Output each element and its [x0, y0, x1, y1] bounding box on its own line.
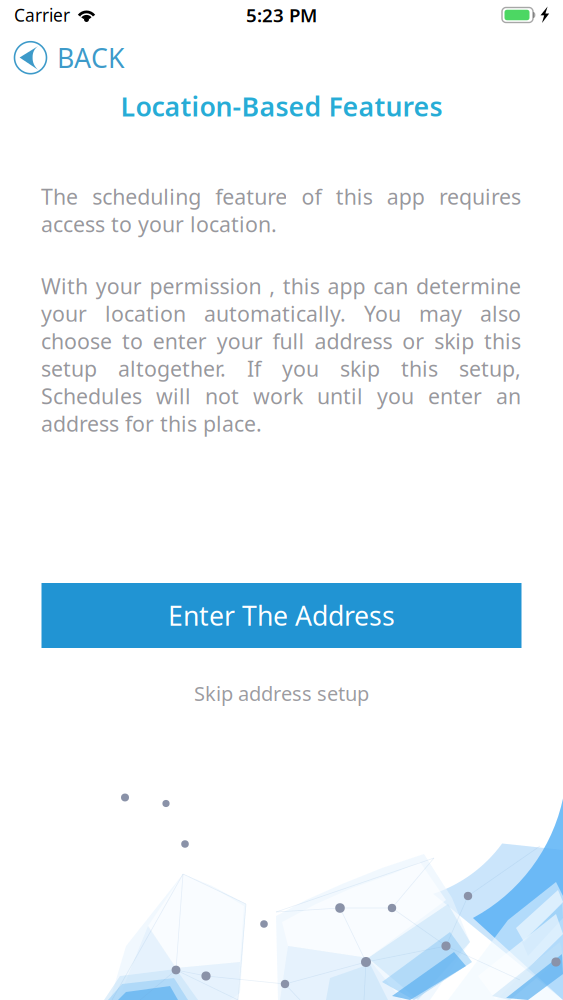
staticText: choose: [41, 327, 112, 355]
staticText: setup,: [459, 354, 521, 383]
staticText: automatically.: [204, 299, 346, 328]
staticText: also: [480, 299, 521, 328]
staticText: your: [41, 299, 87, 328]
staticText: Skip address setup: [194, 680, 369, 707]
staticText: The: [41, 182, 78, 211]
staticText: enter: [153, 327, 207, 355]
staticText: you: [377, 382, 414, 410]
staticText: skip: [340, 354, 380, 383]
staticText: will: [156, 382, 191, 410]
staticText: an: [496, 382, 521, 410]
staticText: may: [419, 299, 462, 328]
staticText: Enter The Address: [168, 598, 395, 633]
staticText: permission: [149, 272, 261, 300]
staticText: this: [401, 354, 438, 383]
staticText: You: [364, 299, 401, 328]
staticText: altogether.: [118, 354, 226, 383]
button[interactable]: BACK: [0, 30, 141, 79]
staticText: your: [217, 327, 263, 355]
staticText: Carrier: [14, 3, 70, 26]
staticText: location: [105, 299, 186, 328]
staticText: or: [402, 327, 424, 355]
staticText: can: [373, 272, 408, 300]
staticText: until: [317, 382, 363, 410]
staticText: your: [96, 272, 142, 300]
staticText: address for this place.: [41, 409, 262, 438]
button[interactable]: Skip address setup: [184, 675, 379, 712]
staticText: of: [301, 182, 321, 211]
staticText: If: [247, 354, 261, 383]
staticText: skip: [434, 327, 474, 355]
staticText: Location-Based Features: [120, 88, 442, 124]
staticText: full: [272, 327, 304, 355]
staticText: 5:23 PM: [246, 3, 317, 27]
staticText: requires: [439, 182, 521, 211]
staticText: determine: [416, 272, 521, 300]
staticText: With: [41, 272, 88, 300]
staticText: this: [283, 272, 320, 300]
staticText: enter: [428, 382, 482, 410]
staticText: this: [336, 182, 373, 211]
staticText: work: [253, 382, 303, 410]
staticText: address: [314, 327, 392, 355]
staticText: this: [484, 327, 521, 355]
staticText: you: [282, 354, 319, 383]
staticText: Schedules: [41, 382, 142, 410]
staticText: setup: [41, 354, 97, 383]
button[interactable]: Enter The Address: [41, 583, 521, 648]
staticText: not: [205, 382, 239, 410]
staticText: access to your location.: [41, 210, 277, 238]
staticText: BACK: [57, 40, 125, 75]
staticText: app: [328, 272, 366, 300]
staticText: feature: [215, 182, 287, 211]
staticText: app: [387, 182, 425, 211]
staticText: ,: [269, 272, 275, 300]
staticText: to: [122, 327, 143, 355]
staticText: scheduling: [92, 182, 201, 211]
